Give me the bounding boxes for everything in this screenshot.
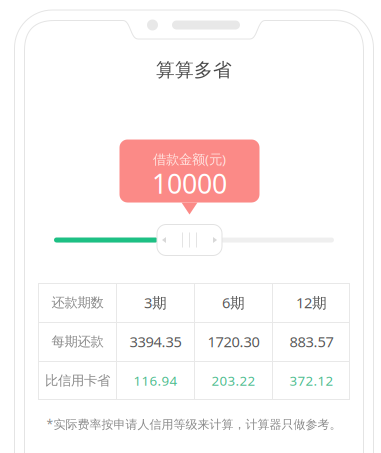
staticText: 比信用卡省 — [45, 372, 110, 389]
staticText: 6期 — [222, 293, 245, 312]
staticText: 10000 — [152, 166, 227, 201]
staticText: 3期 — [144, 293, 167, 312]
staticText: 372.12 — [289, 372, 333, 389]
staticText: 借款金额(元) — [153, 150, 226, 168]
staticText: *实际费率按申请人信用等级来计算，计算器只做参考。 — [46, 416, 341, 432]
staticText: 203.22 — [211, 372, 255, 389]
staticText: 1720.30 — [207, 332, 259, 351]
staticText: 116.94 — [133, 372, 177, 389]
staticText: 12期 — [296, 293, 327, 312]
staticText: 3394.35 — [129, 332, 181, 351]
staticText: 每期还款 — [51, 333, 103, 350]
staticText: 算算多省 — [156, 58, 232, 81]
staticText: 883.57 — [289, 332, 333, 351]
staticText: 还款期数 — [51, 294, 103, 311]
